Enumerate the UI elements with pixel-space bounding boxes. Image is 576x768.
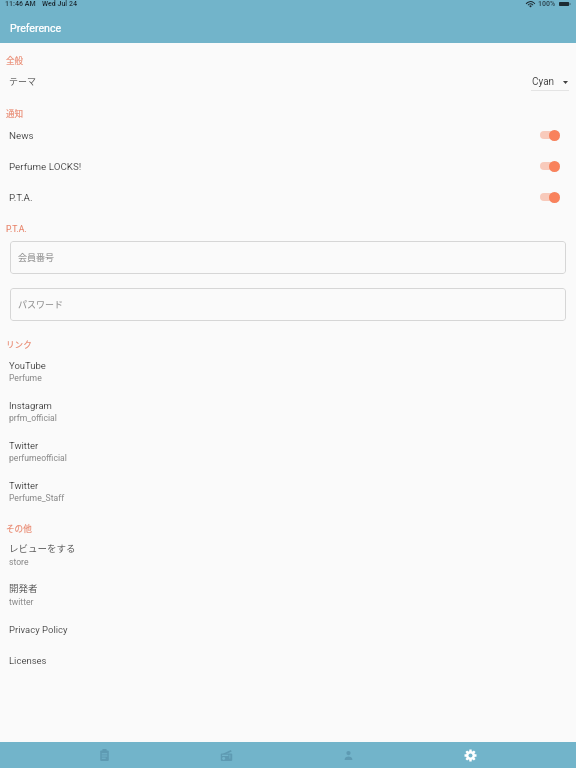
staticText: Perfume LOCKS!: [9, 161, 540, 172]
staticText: 会員番号: [18, 251, 55, 264]
staticText: Twitter: [9, 480, 39, 491]
button[interactable]: 会員番号: [10, 241, 566, 274]
button[interactable]: Licenses: [0, 645, 576, 676]
staticText: Perfume_Staff: [9, 493, 65, 503]
staticText: レビューをする: [9, 541, 76, 555]
staticText: Perfume: [9, 373, 42, 383]
staticText: テーマ: [9, 75, 531, 88]
staticText: prfm_official: [9, 413, 57, 423]
button[interactable]: Settings: [409, 742, 531, 768]
button[interactable]: パスワード: [10, 288, 566, 321]
button[interactable]: P.T.A.: [0, 182, 576, 213]
staticText: Preference: [10, 22, 62, 34]
button[interactable]: 開発者: [0, 574, 576, 614]
button[interactable]: テーマ: [0, 66, 576, 96]
staticText: 100%: [538, 0, 556, 8]
button[interactable]: News: [0, 120, 576, 151]
button[interactable]: Instagram: [0, 391, 576, 431]
button[interactable]: Privacy Policy: [0, 614, 576, 645]
button[interactable]: List: [44, 742, 165, 768]
staticText: P.T.A.: [6, 224, 27, 234]
button[interactable]: Radio: [165, 742, 287, 768]
staticText: twitter: [9, 597, 34, 607]
button[interactable]: レビューをする: [0, 534, 576, 574]
staticText: パスワード: [18, 298, 64, 311]
button[interactable]: Twitter: [0, 471, 576, 511]
staticText: 全般: [6, 54, 24, 66]
staticText: perfumeofficial: [9, 453, 67, 463]
staticText: Licenses: [9, 655, 47, 666]
button[interactable]: YouTube: [0, 351, 576, 391]
staticText: store: [9, 557, 29, 567]
staticText: 11:46 AM: [5, 0, 36, 8]
staticText: News: [9, 130, 540, 141]
staticText: P.T.A.: [9, 192, 540, 203]
staticText: YouTube: [9, 360, 46, 371]
staticText: 通知: [6, 107, 24, 119]
staticText: 開発者: [9, 581, 38, 595]
staticText: Privacy Policy: [9, 624, 68, 635]
staticText: Twitter: [9, 440, 39, 451]
staticText: Instagram: [9, 400, 52, 411]
staticText: Wed Jul 24: [42, 0, 77, 8]
button[interactable]: Twitter: [0, 431, 576, 471]
staticText: リンク: [6, 338, 32, 350]
button[interactable]: Perfume LOCKS!: [0, 151, 576, 182]
staticText: その他: [6, 522, 32, 534]
staticText: Cyan: [532, 76, 555, 88]
